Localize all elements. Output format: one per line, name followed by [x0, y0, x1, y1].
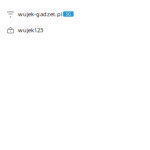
staticText: 5G [66, 11, 71, 17]
staticText: wujek-gadzet.pl [18, 10, 62, 18]
staticText: wujek123 [18, 26, 43, 34]
button[interactable]: wujek-gadzet.pl [0, 6, 150, 22]
button[interactable]: wujek123 [0, 22, 150, 38]
